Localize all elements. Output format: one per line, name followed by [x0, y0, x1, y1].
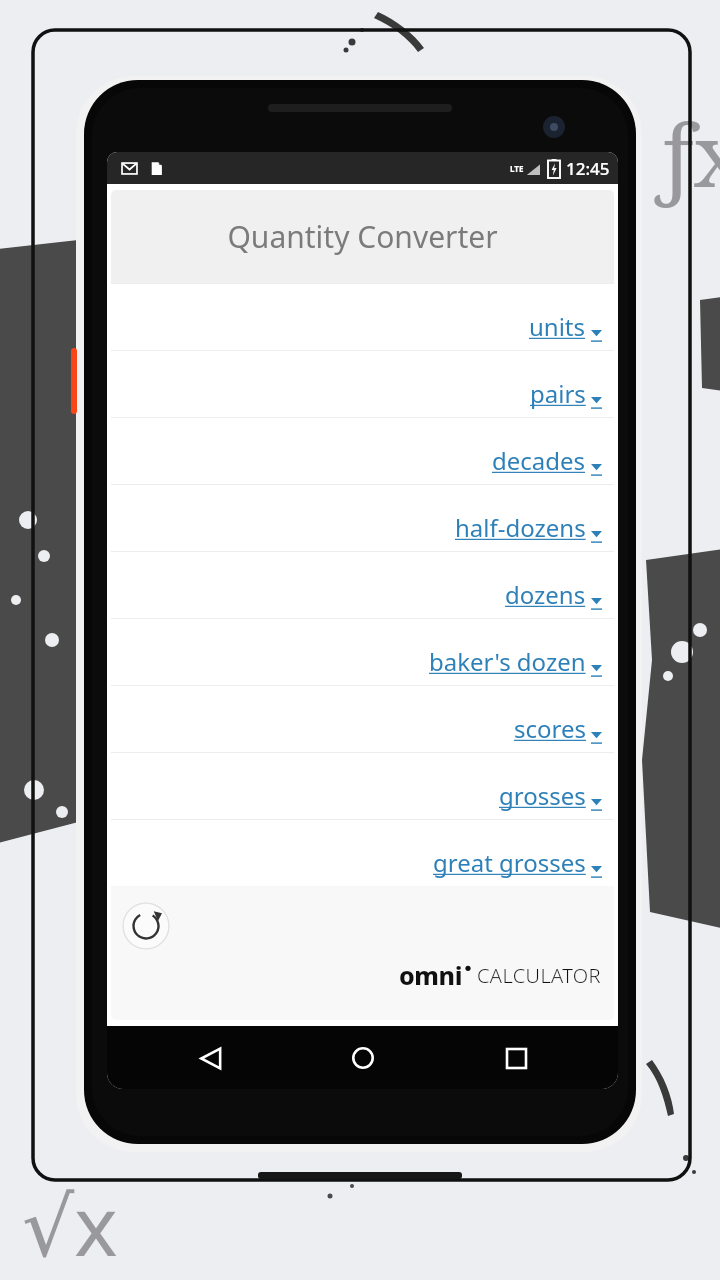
button[interactable]: units [111, 283, 614, 350]
button[interactable]: Recent apps [492, 1034, 540, 1082]
button[interactable]: half-dozens [111, 484, 614, 551]
staticText: 12:45 [566, 157, 610, 180]
button[interactable]: decades [111, 417, 614, 484]
staticText: Quantity Converter [227, 216, 498, 257]
staticText: units [529, 310, 586, 343]
staticText: dozens [505, 578, 586, 611]
button[interactable]: baker's dozen [111, 618, 614, 685]
button[interactable]: Back [186, 1034, 234, 1082]
staticText: CALCULATOR [477, 962, 601, 989]
staticText: √x [22, 1168, 118, 1280]
button[interactable]: great grosses [111, 819, 614, 886]
button[interactable]: dozens [111, 551, 614, 618]
button[interactable]: omni [399, 958, 601, 992]
button[interactable]: Reset [122, 902, 170, 950]
staticText: half-dozens [455, 511, 586, 544]
staticText: scores [514, 712, 586, 745]
button[interactable]: Home [339, 1034, 387, 1082]
staticText: pairs [530, 377, 586, 410]
staticText: omni [399, 958, 463, 992]
staticText: great grosses [433, 846, 586, 879]
button[interactable]: pairs [111, 350, 614, 417]
staticText: ƒx [655, 95, 720, 212]
staticText: decades [492, 444, 586, 477]
staticText: LTE [510, 163, 524, 174]
button[interactable]: scores [111, 685, 614, 752]
staticText: baker's dozen [429, 645, 586, 678]
staticText: grosses [499, 779, 586, 812]
button[interactable]: grosses [111, 752, 614, 819]
